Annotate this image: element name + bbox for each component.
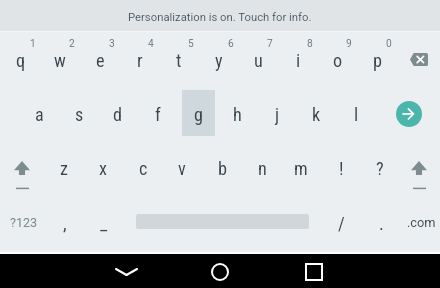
staticText: k (312, 104, 321, 125)
staticText: _ (100, 213, 108, 234)
button[interactable]: ! (320, 143, 360, 199)
button[interactable]: p (357, 31, 397, 87)
button[interactable]: n (241, 143, 281, 199)
button[interactable]: Recents (281, 255, 347, 288)
button[interactable]: u (239, 31, 279, 87)
staticText: 5 (188, 38, 194, 50)
staticText: 0 (386, 38, 392, 50)
staticText: f (155, 104, 161, 125)
staticText: Personalization is on. Touch for info. (128, 11, 312, 24)
staticText: 9 (346, 38, 352, 50)
staticText: w (54, 50, 66, 71)
staticText: .com (407, 215, 436, 230)
staticText: v (178, 158, 186, 179)
staticText: d (113, 104, 123, 125)
button[interactable]: z (43, 143, 83, 199)
staticText: x (99, 158, 107, 179)
staticText: i (296, 50, 301, 71)
staticText: 3 (109, 38, 115, 50)
staticText: n (258, 158, 267, 179)
button[interactable]: Period (360, 198, 399, 254)
staticText: b (218, 158, 227, 179)
staticText: t (176, 50, 182, 71)
staticText: p (373, 50, 382, 71)
button[interactable]: v (162, 143, 202, 199)
button[interactable]: Comma (46, 198, 85, 254)
button[interactable]: s (59, 87, 99, 143)
button[interactable]: Shift (3, 143, 43, 199)
button[interactable]: y (199, 31, 239, 87)
button[interactable]: r (120, 31, 160, 87)
staticText: l (354, 104, 359, 125)
button[interactable]: d (99, 87, 139, 143)
button[interactable]: Shift (399, 143, 439, 199)
button[interactable]: k (297, 87, 337, 143)
staticText: ? (376, 158, 384, 179)
button[interactable]: x (82, 143, 122, 199)
button[interactable]: g (178, 87, 218, 143)
staticText: q (16, 50, 26, 71)
staticText: h (233, 104, 242, 125)
staticText: m (294, 158, 308, 179)
button[interactable]: a (19, 87, 59, 143)
button[interactable]: q (1, 31, 41, 87)
staticText: . (379, 213, 384, 234)
button[interactable]: dot com (399, 198, 440, 254)
button[interactable]: Symbols (0, 198, 46, 254)
button[interactable]: Underscore (85, 198, 124, 254)
button[interactable]: h (217, 87, 257, 143)
staticText: , (63, 213, 67, 234)
staticText: 1 (30, 38, 36, 50)
button[interactable]: Personalization is on. Touch for info. (0, 0, 440, 31)
button[interactable]: l (336, 87, 376, 143)
staticText: 8 (307, 38, 313, 50)
button[interactable]: i (278, 31, 318, 87)
staticText: c (139, 158, 148, 179)
staticText: e (96, 50, 105, 71)
button[interactable]: w (41, 31, 81, 87)
button[interactable]: m (280, 143, 320, 199)
button[interactable]: t (159, 31, 199, 87)
staticText: r (137, 50, 143, 71)
button[interactable]: j (257, 87, 297, 143)
staticText: j (275, 104, 280, 125)
button[interactable]: f (138, 87, 178, 143)
staticText: ! (339, 158, 344, 179)
staticText: 4 (148, 38, 154, 50)
staticText: y (215, 50, 223, 71)
button[interactable]: Space (124, 198, 321, 254)
button[interactable]: Home (187, 255, 253, 288)
staticText: z (60, 158, 68, 179)
staticText: g (194, 104, 203, 125)
staticText: u (254, 50, 263, 71)
button[interactable]: o (318, 31, 358, 87)
button[interactable]: b (201, 143, 241, 199)
button[interactable]: Enter (376, 87, 440, 143)
staticText: / (338, 213, 345, 234)
button[interactable]: Backspace (397, 31, 440, 87)
button[interactable]: e (80, 31, 120, 87)
staticText: ?123 (10, 215, 38, 230)
button[interactable]: ? (360, 143, 400, 199)
staticText: a (35, 104, 44, 125)
staticText: o (333, 50, 343, 71)
button[interactable]: Slash (321, 198, 360, 254)
staticText: s (75, 104, 84, 125)
staticText: 2 (69, 38, 75, 50)
staticText: 7 (267, 38, 273, 50)
staticText: 6 (228, 38, 234, 50)
button[interactable]: Hide keyboard (93, 255, 159, 288)
button[interactable]: c (122, 143, 162, 199)
